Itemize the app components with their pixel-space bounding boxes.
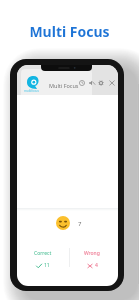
staticText: Multi Focus <box>29 22 110 41</box>
staticText: 7 <box>78 220 82 228</box>
staticText: Correct <box>34 250 52 257</box>
staticText: Multi Focus <box>49 82 79 89</box>
button[interactable]: Close <box>108 79 115 86</box>
button[interactable]: Multi Focus <box>0 22 139 41</box>
staticText: 4 <box>95 262 98 269</box>
button[interactable]: Timer <box>78 79 85 86</box>
staticText: Wrong <box>84 250 100 257</box>
button[interactable]: Mute <box>88 79 95 86</box>
staticText: multifocus <box>24 89 39 93</box>
button[interactable]: Correct <box>17 246 69 269</box>
button[interactable] <box>21 69 92 96</box>
staticText: 11 <box>44 262 50 269</box>
button[interactable]: Site logo <box>27 76 40 89</box>
button[interactable]: Settings <box>97 79 104 86</box>
button[interactable]: Wrong <box>69 246 115 269</box>
